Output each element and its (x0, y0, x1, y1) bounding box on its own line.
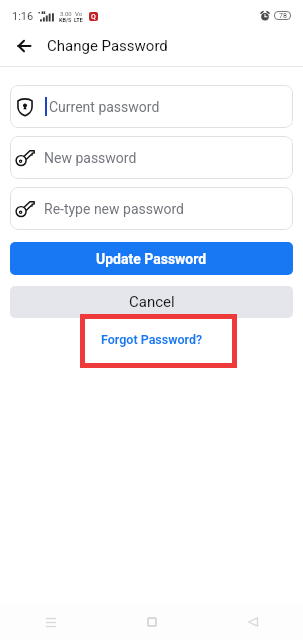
staticText: Re-type new password (44, 201, 184, 217)
staticText: Vo (75, 10, 83, 17)
staticText: 1:16 (12, 10, 34, 23)
button[interactable]: Home (101, 604, 202, 640)
staticText: 78 (279, 12, 287, 20)
staticText: KB/S (59, 17, 72, 23)
button[interactable]: New password (10, 136, 293, 179)
staticText: Forgot Password? (101, 332, 203, 347)
button[interactable]: Recent apps (0, 604, 101, 640)
staticText: 3.00 (60, 10, 72, 17)
staticText: Q (91, 13, 96, 21)
button[interactable]: Forgot Password? (0, 319, 303, 359)
button[interactable]: Cancel (10, 286, 293, 318)
button[interactable]: Back (10, 32, 38, 60)
staticText: Update Password (96, 251, 207, 267)
staticText: Current password (49, 99, 160, 115)
staticText: Cancel (129, 293, 175, 311)
staticText: Change Password (47, 37, 168, 55)
staticText: LTE (74, 17, 83, 23)
staticText: New password (44, 150, 137, 166)
button[interactable]: Re-type new password (10, 187, 293, 230)
button[interactable]: Back (202, 604, 303, 640)
button[interactable]: Current password (10, 85, 293, 128)
button[interactable]: Update Password (10, 242, 293, 275)
